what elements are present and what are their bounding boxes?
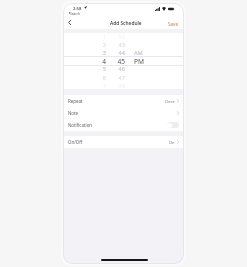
staticText: On xyxy=(169,140,175,145)
staticText: AM xyxy=(134,49,148,57)
staticText: On/Off xyxy=(68,139,83,145)
staticText: Search xyxy=(70,12,81,16)
staticText: 2:58 xyxy=(73,6,82,12)
staticText: 7 xyxy=(88,82,106,90)
button[interactable]: On/Off xyxy=(63,136,184,148)
staticText: PM xyxy=(134,57,148,65)
staticText: Notification xyxy=(68,122,93,128)
staticText: 48 xyxy=(107,82,125,90)
button[interactable]: Save xyxy=(168,17,184,30)
staticText: Save xyxy=(168,21,179,27)
staticText: 3 xyxy=(88,49,106,57)
staticText: 47 xyxy=(107,74,125,82)
staticText: Repeat xyxy=(68,98,83,104)
staticText: Add Schedule xyxy=(110,20,142,27)
button[interactable]: Repeat xyxy=(63,95,184,107)
staticText: 44 xyxy=(107,49,125,57)
staticText: Note xyxy=(68,110,79,116)
staticText: Once xyxy=(165,99,175,104)
button[interactable]: Note xyxy=(63,107,184,119)
staticText: 2 xyxy=(88,41,106,49)
staticText: 43 xyxy=(107,41,125,49)
staticText: 4 xyxy=(88,57,106,65)
staticText: 46 xyxy=(107,65,125,73)
staticText: 5 xyxy=(88,65,106,73)
button[interactable]: Back xyxy=(64,17,75,30)
staticText: 6 xyxy=(88,74,106,82)
staticText: 45 xyxy=(107,57,125,65)
button[interactable]: Notification xyxy=(63,119,184,131)
